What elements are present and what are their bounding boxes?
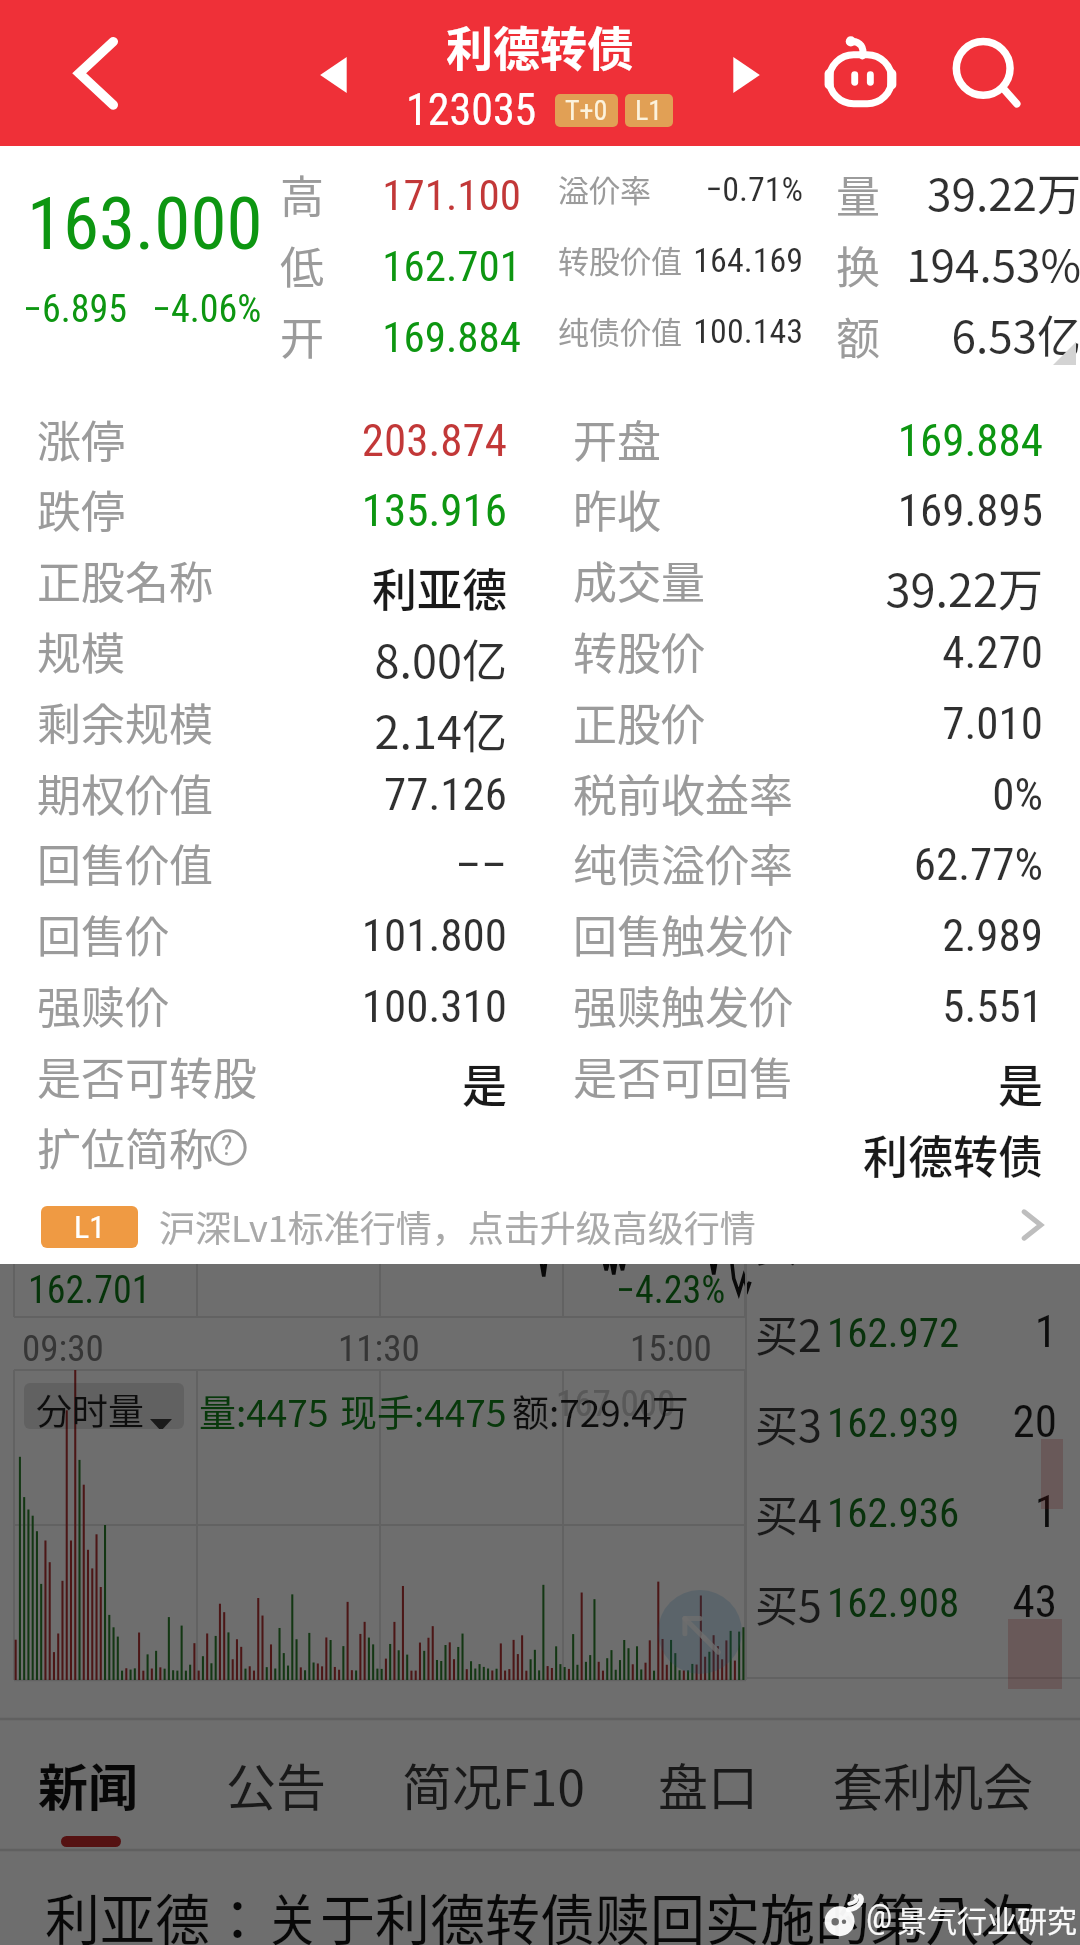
staticText: 高 bbox=[280, 162, 324, 226]
staticText: 简况F10 bbox=[402, 1748, 586, 1820]
staticText: @ bbox=[866, 1896, 893, 1936]
staticText: 转股价值 bbox=[558, 237, 682, 282]
button[interactable] bbox=[0, 837, 540, 907]
staticText: 2.14亿 bbox=[150, 697, 507, 762]
staticText: 167.000 bbox=[556, 1382, 676, 1425]
staticText: 景气行业研究 bbox=[897, 1897, 1077, 1940]
staticText: 盘口 bbox=[658, 1748, 758, 1820]
staticText: 09:30 bbox=[22, 1327, 104, 1370]
staticText: 100.143 bbox=[693, 311, 803, 351]
staticText: –– bbox=[150, 838, 507, 891]
button[interactable]: 公告 bbox=[210, 1736, 342, 1832]
staticText: 低 bbox=[280, 233, 324, 297]
button[interactable]: 套利机会 bbox=[817, 1736, 1049, 1832]
staticText: 剩余规模 bbox=[37, 690, 213, 754]
button[interactable] bbox=[0, 696, 540, 766]
staticText: 11:30 bbox=[338, 1327, 420, 1370]
staticText: 分时量 bbox=[36, 1383, 145, 1429]
staticText: 135.916 bbox=[150, 484, 507, 537]
staticText: 利德转债 bbox=[680, 1122, 1043, 1187]
staticText: 昨收 bbox=[573, 477, 661, 541]
button[interactable] bbox=[0, 413, 540, 483]
button[interactable]: L1 bbox=[0, 1185, 1080, 1263]
staticText: 溢价率 bbox=[558, 166, 651, 211]
button[interactable] bbox=[0, 554, 540, 624]
button[interactable] bbox=[746, 1460, 1080, 1550]
button[interactable] bbox=[0, 1121, 540, 1191]
button[interactable]: Next stock bbox=[700, 26, 790, 116]
button[interactable] bbox=[0, 1050, 540, 1120]
staticText: 额 bbox=[836, 304, 880, 368]
button[interactable]: T+0 bbox=[555, 94, 618, 127]
button[interactable] bbox=[0, 767, 540, 837]
staticText: 开盘 bbox=[573, 407, 661, 471]
button[interactable]: 分时量 bbox=[24, 1383, 184, 1429]
staticText: 8.00亿 bbox=[150, 626, 507, 691]
staticText: 新闻 bbox=[38, 1748, 138, 1820]
staticText: 162.701 bbox=[326, 241, 521, 291]
staticText: 是 bbox=[150, 1051, 507, 1116]
staticText: 1 bbox=[900, 1485, 1057, 1538]
staticText: 5.551 bbox=[680, 980, 1043, 1033]
button[interactable] bbox=[746, 1370, 1080, 1460]
staticText: 162.939 bbox=[827, 1399, 960, 1447]
staticText: 6.53亿 bbox=[836, 302, 1080, 366]
staticText: 39.22万 bbox=[836, 160, 1080, 224]
staticText: 回售触发价 bbox=[573, 902, 793, 966]
staticText: 是否可回售 bbox=[573, 1044, 793, 1108]
button[interactable]: AI assistant bbox=[814, 36, 906, 108]
staticText: 100.310 bbox=[150, 980, 507, 1033]
staticText: 正股价 bbox=[573, 690, 705, 754]
button[interactable] bbox=[746, 1280, 1080, 1370]
staticText: 正股名称 bbox=[37, 548, 213, 612]
button[interactable]: L1 bbox=[625, 94, 673, 127]
staticText: 1 bbox=[900, 1305, 1057, 1358]
staticText: L1 bbox=[635, 94, 663, 127]
staticText: 利德转债 bbox=[0, 11, 1080, 79]
staticText: −4.23% bbox=[616, 1268, 726, 1313]
staticText: 扩位简称 bbox=[37, 1115, 213, 1179]
button[interactable]: Previous stock bbox=[290, 26, 380, 116]
staticText: L1 bbox=[74, 1208, 106, 1246]
staticText: 0% bbox=[680, 768, 1043, 821]
staticText: 纯债溢价率 bbox=[573, 831, 793, 895]
staticText: 169.895 bbox=[680, 484, 1043, 537]
button[interactable]: Back bbox=[48, 21, 144, 117]
staticText: 转股价 bbox=[573, 619, 705, 683]
staticText: 39.22万 bbox=[680, 555, 1043, 620]
button[interactable]: 新闻 bbox=[22, 1736, 154, 1832]
staticText: 强赎触发价 bbox=[573, 973, 793, 1037]
staticText: −6.895 bbox=[23, 287, 128, 332]
staticText: 利亚德 bbox=[150, 555, 507, 620]
staticText: 回售价值 bbox=[37, 831, 213, 895]
button[interactable]: 盘口 bbox=[642, 1736, 774, 1832]
staticText: 203.874 bbox=[150, 414, 507, 467]
button[interactable] bbox=[0, 483, 540, 553]
button[interactable] bbox=[0, 908, 540, 978]
staticText: 62.77% bbox=[680, 838, 1043, 891]
staticText: 是 bbox=[680, 1051, 1043, 1116]
button[interactable]: Search bbox=[940, 28, 1036, 124]
staticText: 期权价值 bbox=[37, 761, 213, 825]
staticText: 162.908 bbox=[827, 1579, 960, 1627]
button[interactable]: 简况F10 bbox=[386, 1736, 602, 1832]
staticText: 162.936 bbox=[827, 1489, 960, 1537]
staticText: 169.884 bbox=[326, 312, 521, 362]
staticText: 123035 bbox=[406, 84, 537, 136]
button[interactable] bbox=[746, 1550, 1080, 1640]
staticText: ? bbox=[221, 1130, 233, 1162]
staticText: 利亚德：关于利德转债赎回实施的第八次 bbox=[45, 1876, 1036, 1945]
button[interactable] bbox=[0, 625, 540, 695]
staticText: 是否可转股 bbox=[37, 1044, 257, 1108]
button[interactable] bbox=[0, 979, 540, 1049]
staticText: 77.126 bbox=[150, 768, 507, 821]
staticText: 现手:4475 bbox=[340, 1384, 507, 1438]
staticText: 买5 bbox=[755, 1572, 822, 1634]
staticText: 162.972 bbox=[827, 1309, 960, 1357]
staticText: 额:729.4万 bbox=[512, 1384, 689, 1438]
staticText: 7.010 bbox=[680, 697, 1043, 750]
staticText: T+0 bbox=[565, 94, 608, 127]
staticText: 沪深Lv1标准行情，点击升级高级行情 bbox=[159, 1200, 756, 1252]
staticText: 回售价 bbox=[37, 902, 169, 966]
staticText: 194.53% bbox=[836, 231, 1080, 295]
